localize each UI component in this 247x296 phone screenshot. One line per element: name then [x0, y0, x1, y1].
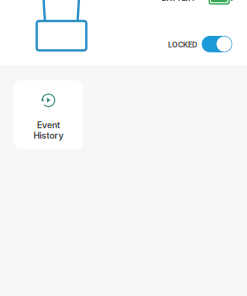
staticText: BATTERY [161, 0, 195, 3]
button[interactable]: Event [14, 80, 83, 149]
staticText: LOCKED [168, 40, 197, 49]
staticText: History [33, 130, 63, 141]
staticText: Event [37, 120, 60, 130]
button[interactable]: LOCKED [167, 32, 233, 56]
